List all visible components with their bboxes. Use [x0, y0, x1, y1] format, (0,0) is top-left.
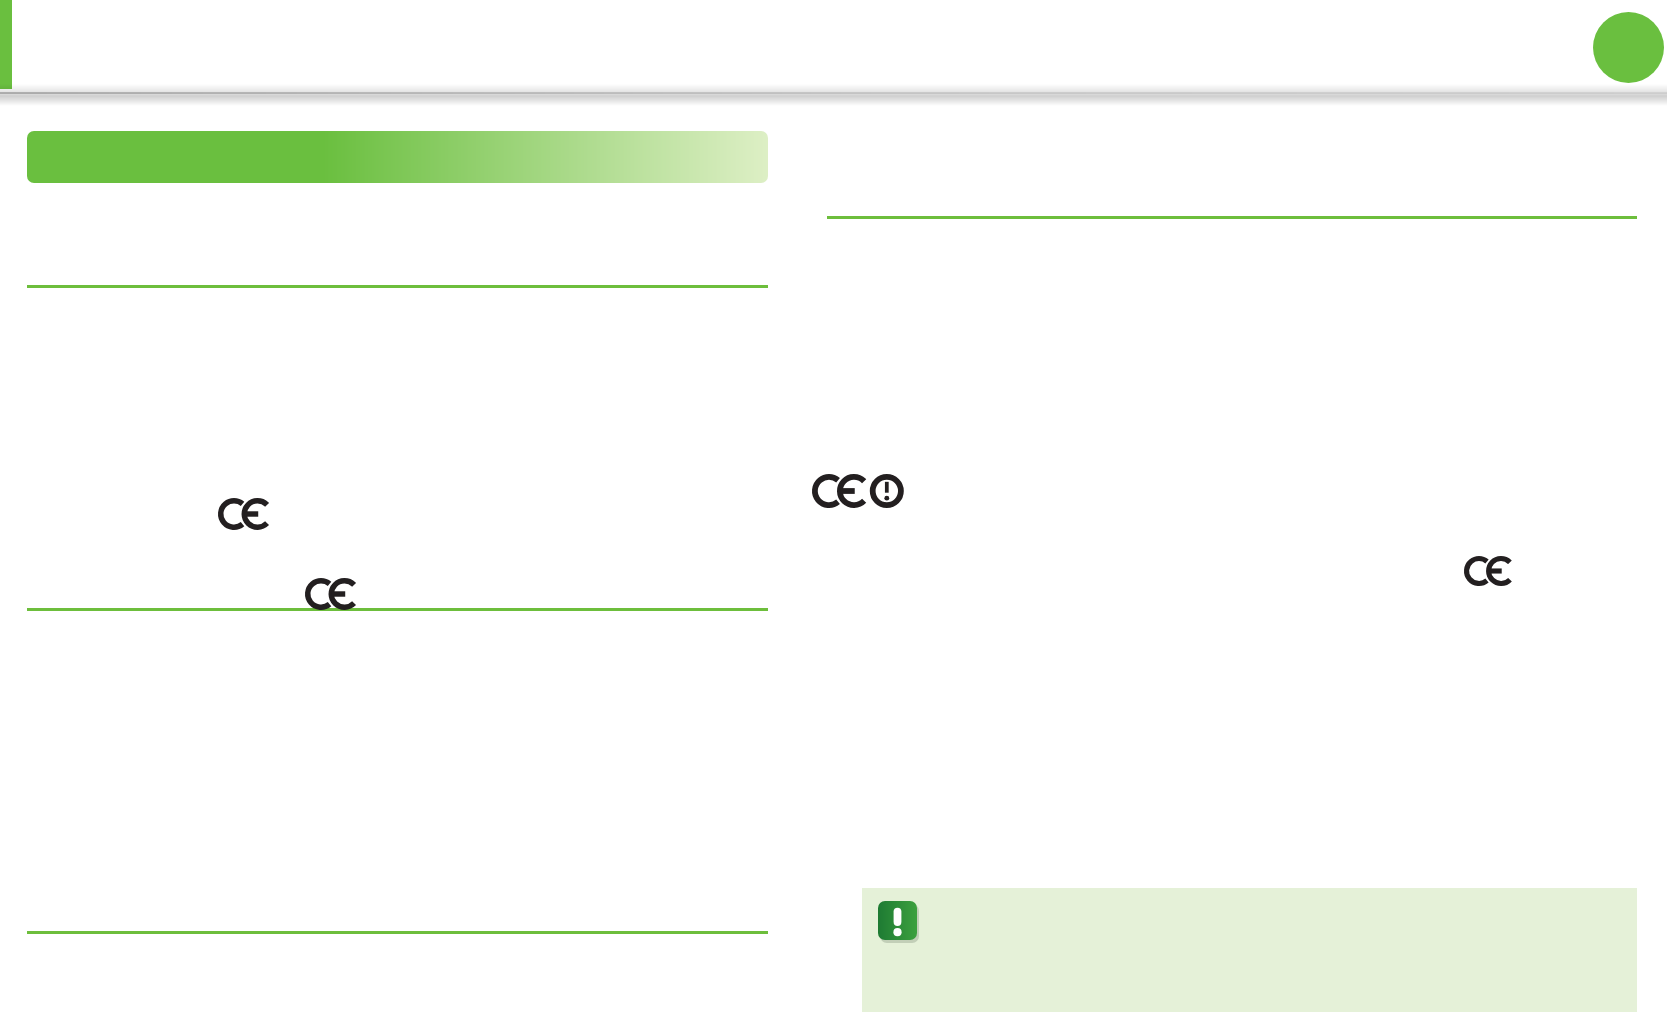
- button[interactable]: Page number marker: [1593, 12, 1664, 83]
- button[interactable]: Section heading: [27, 131, 768, 183]
- button[interactable]: [862, 888, 1637, 1012]
